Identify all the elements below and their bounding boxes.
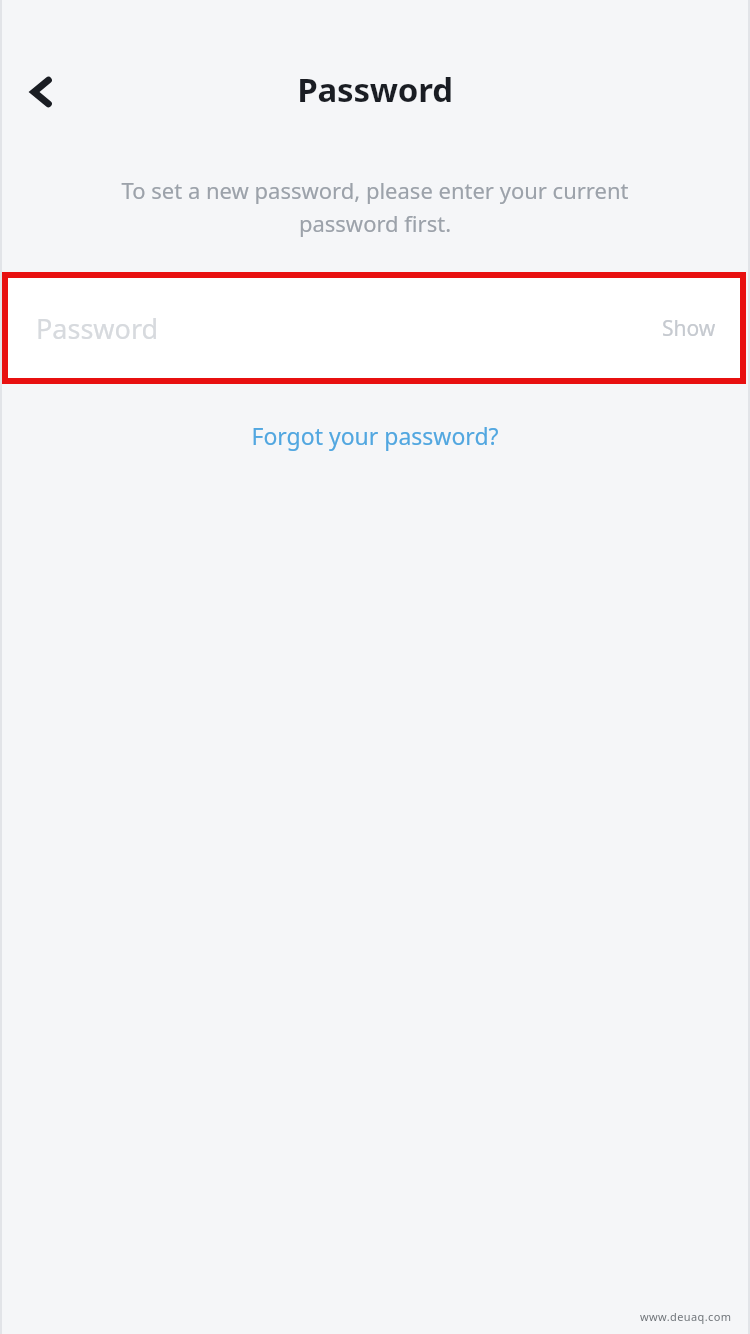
button[interactable]: Password	[8, 278, 740, 378]
button[interactable]: Forgot your password?	[235, 414, 515, 457]
staticText: To set a new password, please enter your…	[100, 175, 650, 238]
staticText: Forgot your password?	[251, 420, 499, 451]
button[interactable]: Back	[10, 60, 74, 124]
button[interactable]: Show	[650, 304, 728, 353]
staticText: www.deuaq.com	[640, 1309, 732, 1324]
staticText: Password	[297, 67, 453, 112]
staticText: Show	[662, 314, 716, 343]
staticText: Password	[36, 310, 159, 347]
